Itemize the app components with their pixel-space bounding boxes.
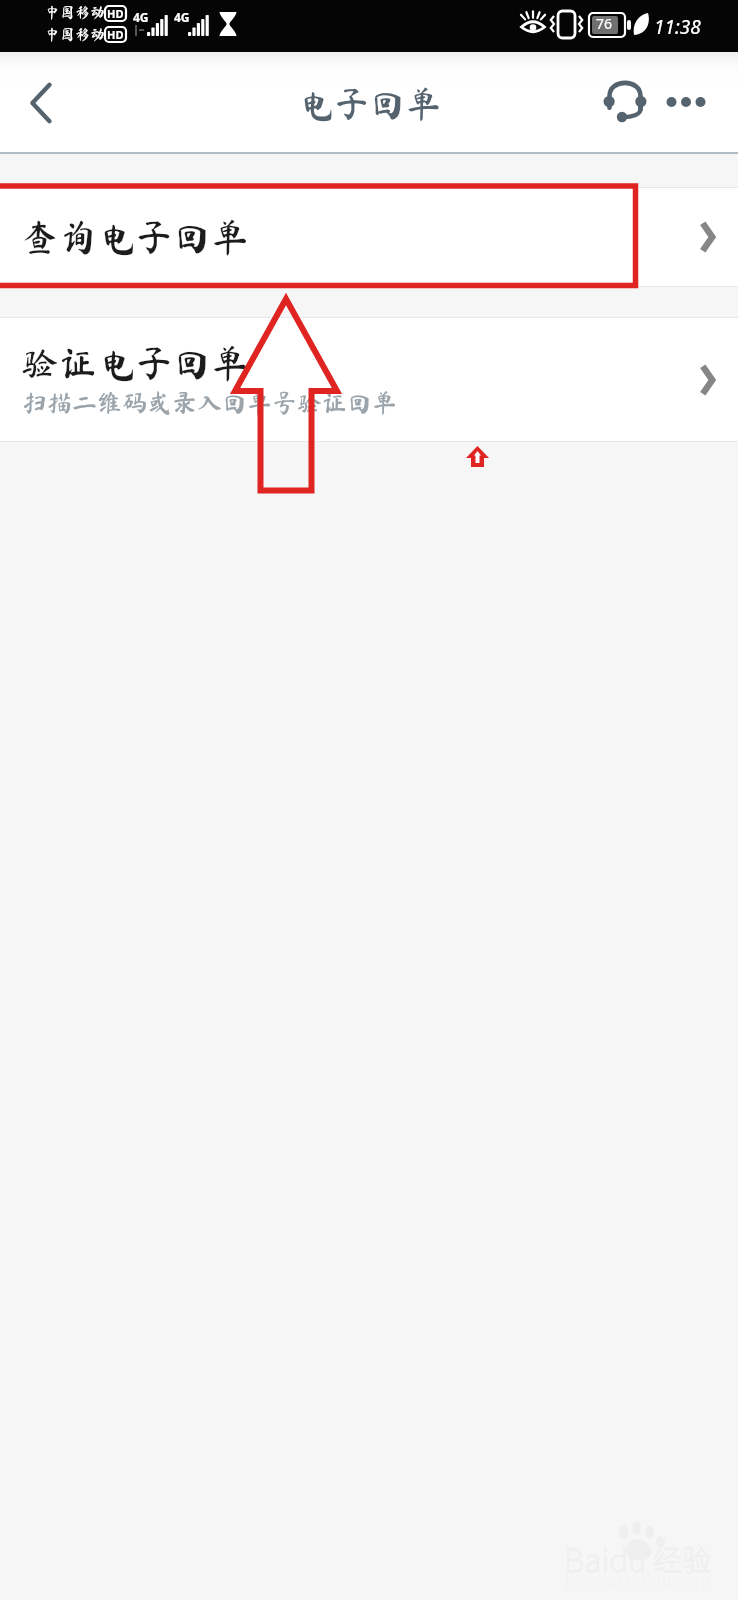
staticText: 扫描二维码或录入回单号验证回单	[22, 390, 398, 415]
button[interactable]: Customer service	[594, 72, 656, 134]
staticText: HD	[107, 27, 124, 42]
button[interactable]: More options	[660, 74, 718, 132]
button[interactable]: 验证电子回单	[0, 318, 738, 441]
staticText: 11:38	[654, 14, 701, 40]
staticText: 电子回单	[297, 85, 442, 121]
button[interactable]: Back	[2, 65, 78, 141]
staticText: 验证电子回单	[21, 344, 250, 382]
staticText: HD	[107, 6, 124, 21]
staticText: 查询电子回单	[21, 218, 250, 256]
staticText: 76	[596, 14, 613, 33]
button[interactable]: 查询电子回单	[0, 188, 738, 286]
staticText: 4G	[133, 9, 149, 25]
staticText: 中国移动	[45, 5, 106, 20]
staticText: 4G	[174, 9, 190, 25]
staticText: 中国移动	[45, 27, 106, 42]
